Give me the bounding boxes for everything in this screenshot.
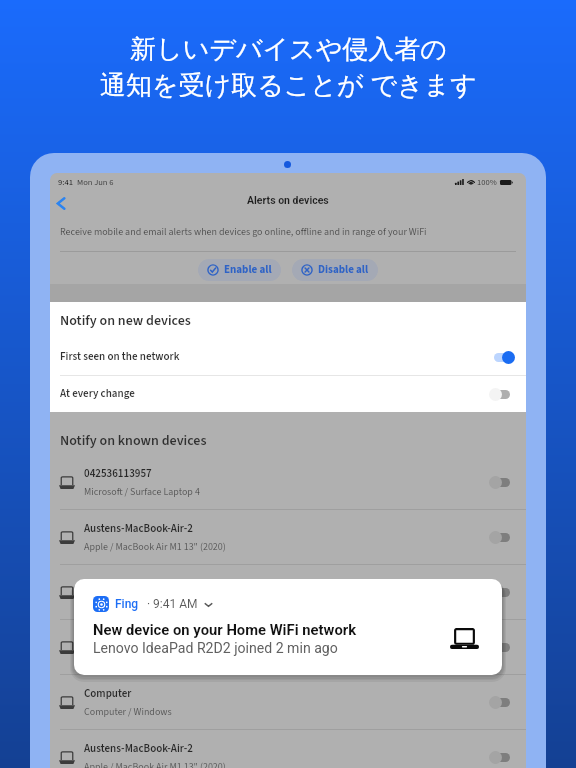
button[interactable]: Disable all — [292, 259, 378, 281]
staticText: Lenovo IdeaPad R2D2 joined 2 min ago — [93, 640, 338, 657]
staticText: Apple / MacBook Air M1 13" (2020) — [84, 650, 226, 664]
button[interactable]: Austens-MacBook-Air-2 — [50, 730, 526, 768]
button[interactable]: Austens-MacBook-Air-2 — [50, 510, 526, 564]
staticText: Notify on known devices — [60, 431, 207, 451]
staticText: Computer — [84, 686, 132, 702]
staticText: First seen on the network — [60, 349, 180, 365]
button[interactable]: 042536113957 — [50, 565, 526, 619]
staticText: New device on your Home WiFi network — [93, 621, 357, 638]
staticText: Microsoft / Surface Laptop 4 — [84, 485, 200, 499]
button[interactable]: Austens-MacBook-Air-2 — [50, 620, 526, 674]
staticText: 100% — [477, 176, 497, 188]
button[interactable]: Back — [50, 192, 72, 214]
staticText: Alerts on devices — [247, 194, 329, 206]
staticText: Apple / MacBook Air M1 13" (2020) — [84, 760, 226, 768]
staticText: Austens-MacBook-Air-2 — [84, 521, 193, 537]
button[interactable]: 042536113957 — [50, 455, 526, 509]
button[interactable]: Fing — [74, 579, 502, 675]
button[interactable]: First seen on the network — [50, 339, 526, 375]
staticText: 042536113957 — [84, 466, 152, 482]
button[interactable]: Computer — [50, 675, 526, 729]
staticText: Austens-MacBook-Air-2 — [84, 631, 193, 647]
staticText: 通知を受け取ることが できます — [100, 66, 477, 102]
staticText: Austens-MacBook-Air-2 — [84, 741, 193, 757]
staticText: Apple / MacBook Air M1 13" (2020) — [84, 540, 226, 554]
staticText: Fing — [115, 597, 139, 611]
staticText: Microsoft / Surface Laptop 4 — [84, 595, 200, 609]
staticText: Disable all — [318, 262, 369, 278]
button[interactable]: At every change — [50, 376, 526, 412]
button[interactable]: Enable all — [198, 259, 281, 281]
staticText: 新しいデバイスや侵入者の — [130, 33, 447, 66]
staticText: 9:41 — [58, 176, 74, 188]
staticText: Computer / Windows — [84, 705, 172, 719]
staticText: At every change — [60, 386, 135, 402]
staticText: Notify on new devices — [60, 311, 191, 331]
staticText: Receive mobile and email alerts when dev… — [60, 225, 427, 239]
staticText: 042536113957 — [84, 576, 152, 592]
staticText: · 9:41 AM — [147, 597, 198, 611]
staticText: Enable all — [224, 262, 272, 278]
staticText: Mon Jun 6 — [77, 176, 114, 188]
